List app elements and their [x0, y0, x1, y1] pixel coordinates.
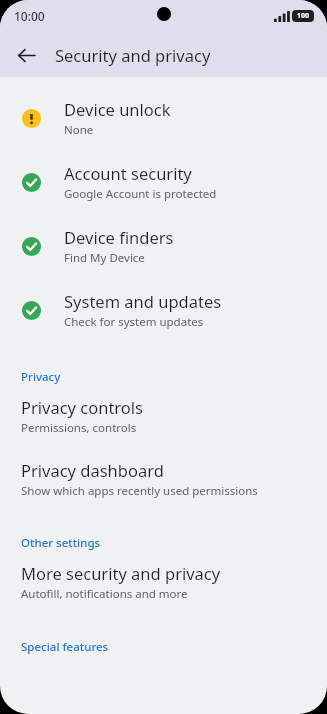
button[interactable]: System and updates: [0, 278, 327, 342]
staticText: Privacy controls: [21, 396, 144, 418]
staticText: Security and privacy: [55, 44, 211, 66]
staticText: System and updates: [64, 290, 222, 312]
staticText: Special features: [21, 639, 109, 655]
staticText: 100: [297, 11, 310, 21]
staticText: 10:00: [14, 8, 45, 24]
button[interactable]: Privacy controls: [0, 390, 327, 442]
button[interactable]: Device unlock: [0, 86, 327, 150]
button[interactable]: Account security: [0, 150, 327, 214]
staticText: Permissions, controls: [21, 420, 137, 436]
staticText: Find My Device: [64, 250, 145, 266]
button[interactable]: Privacy dashboard: [0, 453, 327, 505]
button[interactable]: Back: [7, 36, 45, 74]
button[interactable]: More security and privacy: [0, 556, 327, 608]
button[interactable]: Device finders: [0, 214, 327, 278]
staticText: None: [64, 122, 94, 138]
staticText: Other settings: [21, 535, 101, 551]
staticText: More security and privacy: [21, 562, 221, 584]
staticText: Autofill, notifications and more: [21, 586, 188, 602]
staticText: Check for system updates: [64, 314, 204, 330]
staticText: Account security: [64, 162, 192, 184]
staticText: Device finders: [64, 226, 174, 248]
staticText: Google Account is protected: [64, 186, 217, 202]
staticText: Show which apps recently used permission…: [21, 483, 258, 499]
staticText: Device unlock: [64, 98, 171, 120]
staticText: Privacy dashboard: [21, 459, 164, 481]
staticText: Privacy: [21, 369, 61, 385]
